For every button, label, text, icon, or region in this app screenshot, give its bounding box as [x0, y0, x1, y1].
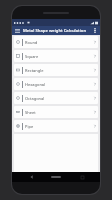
button[interactable]: Square [14, 50, 98, 62]
staticText: Octagonal [25, 96, 94, 101]
button[interactable]: More options [91, 27, 98, 34]
staticText: Pipe [25, 124, 94, 129]
button[interactable]: Round [14, 36, 98, 48]
button[interactable]: Recent apps [78, 173, 86, 181]
button[interactable]: Hexagonal [14, 78, 98, 90]
button[interactable]: Rectangle [14, 64, 98, 76]
staticText: Rectangle [25, 68, 94, 73]
staticText: Square [25, 54, 94, 59]
button[interactable]: Home [49, 173, 63, 181]
staticText: Hexagonal [25, 82, 94, 87]
button[interactable]: Pipe [14, 120, 98, 132]
button[interactable]: Open navigation menu [14, 27, 21, 34]
staticText: Round [25, 40, 94, 45]
button[interactable]: Octagonal [14, 92, 98, 104]
staticText: Metal Shape weight Calculation [23, 28, 87, 34]
staticText: Sheet [25, 110, 94, 115]
button[interactable]: Back [27, 173, 35, 181]
button[interactable]: Sheet [14, 106, 98, 118]
